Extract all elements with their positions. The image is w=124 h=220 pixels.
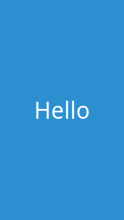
staticText: Hello	[34, 95, 90, 125]
